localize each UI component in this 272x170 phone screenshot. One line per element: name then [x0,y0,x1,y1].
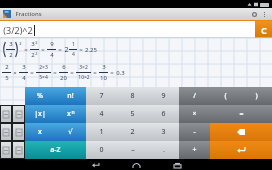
staticText: 20 [60,74,67,82]
staticText: 1 [99,127,104,137]
staticText: = [30,69,34,77]
button[interactable]: / [179,87,210,105]
staticText: C [261,24,267,36]
button[interactable]: × [179,105,210,123]
button[interactable]: 0 [86,141,117,159]
button[interactable]: Template key [13,106,24,122]
button[interactable]: + [179,141,210,159]
staticText: = [24,46,28,54]
button[interactable]: Template key [1,124,11,140]
staticText: 2 [35,40,38,45]
button[interactable]: |x| [25,105,55,123]
button[interactable]: . [148,141,179,159]
button[interactable]: Template key [1,142,11,158]
button[interactable]: Template key [13,142,24,158]
staticText: 9 [50,40,54,48]
staticText: ( [224,91,227,101]
button[interactable]: back [210,123,272,141]
staticText: 2×3 [39,64,48,71]
button[interactable]: Recent apps [170,160,184,170]
button[interactable]: 4 [86,105,117,123]
staticText: (3/2)^2 [3,24,33,36]
staticText: 0.3 [116,69,125,77]
staticText: + [192,145,197,155]
button[interactable]: ( [210,87,241,105]
button[interactable]: Template key [13,124,24,140]
staticText: – [131,145,135,155]
button[interactable]: (3/2)^2 [0,21,255,38]
staticText: |x| [34,109,46,119]
staticText: 6 [161,109,166,119]
button[interactable]: a-Z [25,141,86,159]
staticText: = [53,69,57,77]
button[interactable]: √ [55,123,86,141]
staticText: × [192,109,197,119]
staticText: 3 [102,63,106,71]
button[interactable]: 2 [117,123,148,141]
staticText: = [41,46,45,54]
staticText: 2 [9,51,13,59]
staticText: = [79,46,83,54]
staticText: 2.25 [85,46,97,54]
staticText: 9 [161,91,166,101]
staticText: 3 [31,40,35,48]
staticText: x [38,127,42,137]
staticText: = [58,46,62,54]
staticText: 2 [19,41,22,46]
staticText: = [239,109,244,119]
staticText: 4 [50,51,54,59]
staticText: = [93,69,97,77]
staticText: 5 [130,109,135,119]
staticText: 3 [23,86,26,91]
button[interactable]: Home [129,160,143,170]
staticText: a-Z [50,145,61,155]
button[interactable]: – [117,141,148,159]
button[interactable]: 8 [117,87,148,105]
button[interactable]: 7 [86,87,117,105]
button[interactable]: 5 [117,105,148,123]
button[interactable]: C [255,21,272,38]
staticText: = [70,69,74,77]
staticText: 4 [99,109,104,119]
button[interactable]: x [55,105,86,123]
staticText: 5 [5,74,9,82]
button[interactable]: n! [55,87,86,105]
button[interactable]: 1 [86,123,117,141]
staticText: x [67,109,71,119]
staticText: / [193,91,196,101]
staticText: = [110,69,114,77]
button[interactable]: - [179,123,210,141]
staticText: 4 [22,74,26,82]
button[interactable]: enter [210,141,272,159]
button[interactable]: % [25,87,55,105]
button[interactable]: More options [259,9,269,19]
staticText: 4 [72,51,75,58]
staticText: 8 [130,91,135,101]
staticText: % [37,91,43,101]
staticText: 2 [5,63,9,71]
staticText: 5×4 [39,74,48,81]
staticText: ) [255,91,258,101]
staticText: 2 [31,51,35,59]
staticText: 3×2 [79,64,88,71]
staticText: √ [68,128,73,136]
button[interactable]: x [25,123,55,141]
staticText: 3 [161,127,166,137]
staticText: n! [67,91,74,101]
button[interactable]: 3 [148,123,179,141]
button[interactable]: ) [241,87,272,105]
button[interactable]: = [210,105,272,123]
button[interactable]: Back [88,160,102,170]
button[interactable]: 6 [148,105,179,123]
button[interactable]: 9 [148,87,179,105]
button[interactable]: Settings [249,9,259,19]
staticText: × 3 × 5 = 8 × 3 × 5 = 24 × 5 = 120 [26,86,117,94]
staticText: - [193,127,196,137]
button[interactable]: Template key [1,106,11,122]
staticText: 120 = 2 [2,86,23,94]
staticText: 3 [22,63,26,71]
staticText: 2 [130,127,135,137]
staticText: 10 [100,74,107,82]
staticText: 6 [62,63,66,71]
staticText: 2 [64,45,69,55]
